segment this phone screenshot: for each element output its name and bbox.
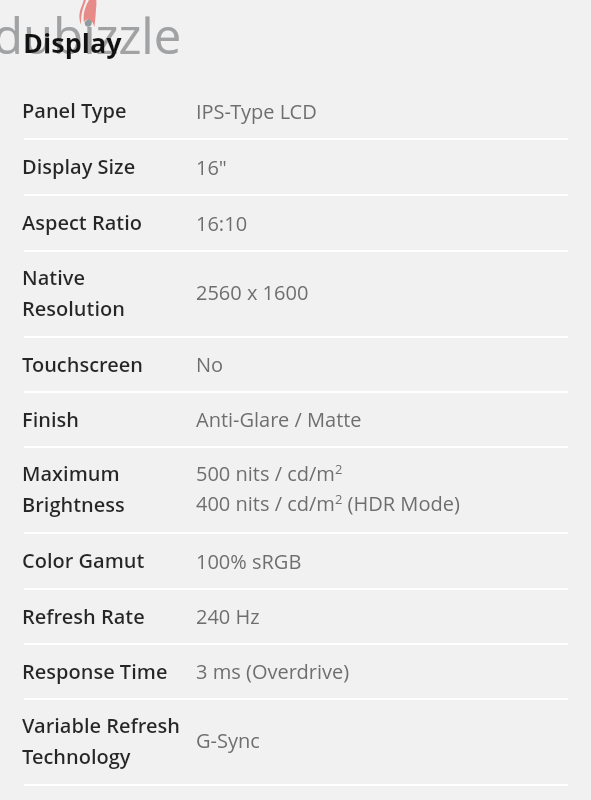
staticText: Touchscreen	[22, 351, 144, 378]
button[interactable]: Color Gamut	[0, 534, 591, 590]
staticText: Aspect Ratio	[22, 209, 142, 236]
staticText: 100% sRGB	[196, 548, 302, 575]
button[interactable]: Touchscreen	[0, 338, 591, 393]
staticText: Maximum Brightness	[22, 460, 125, 517]
button[interactable]: Variable Refresh Technology	[0, 700, 591, 786]
button[interactable]: Native Resolution	[0, 252, 591, 338]
staticText: Refresh Rate	[22, 603, 145, 630]
button[interactable]: Display Size	[0, 140, 591, 196]
staticText: Panel Type	[22, 97, 127, 124]
staticText: 3 ms (Overdrive)	[196, 658, 350, 685]
staticText: Native Resolution	[22, 264, 125, 321]
staticText: No	[196, 351, 224, 378]
staticText: 240 Hz	[196, 603, 260, 630]
staticText: 400 nits / cd/m2 (HDR Mode)	[196, 490, 460, 517]
staticText: IPS-Type LCD	[196, 98, 317, 125]
staticText: Display Size	[22, 153, 136, 180]
staticText: Finish	[22, 406, 79, 433]
staticText: Anti-Glare / Matte	[196, 406, 362, 433]
button[interactable]: Response Time	[0, 645, 591, 700]
button[interactable]: Finish	[0, 393, 591, 448]
button[interactable]: Panel Type	[0, 84, 591, 140]
staticText: Variable Refresh Technology	[22, 712, 180, 769]
button[interactable]: Maximum Brightness	[0, 448, 591, 534]
staticText: 500 nits / cd/m2	[196, 460, 343, 487]
staticText: Display	[23, 24, 122, 61]
staticText: 16:10	[196, 210, 248, 237]
staticText: G-Sync	[196, 727, 260, 754]
button[interactable]: Aspect Ratio	[0, 196, 591, 252]
staticText: Response Time	[22, 658, 168, 685]
staticText: dubizzle	[0, 2, 182, 69]
staticText: 16"	[196, 154, 227, 181]
button[interactable]: Refresh Rate	[0, 590, 591, 645]
staticText: 2560 x 1600	[196, 279, 309, 306]
staticText: Color Gamut	[22, 547, 145, 574]
